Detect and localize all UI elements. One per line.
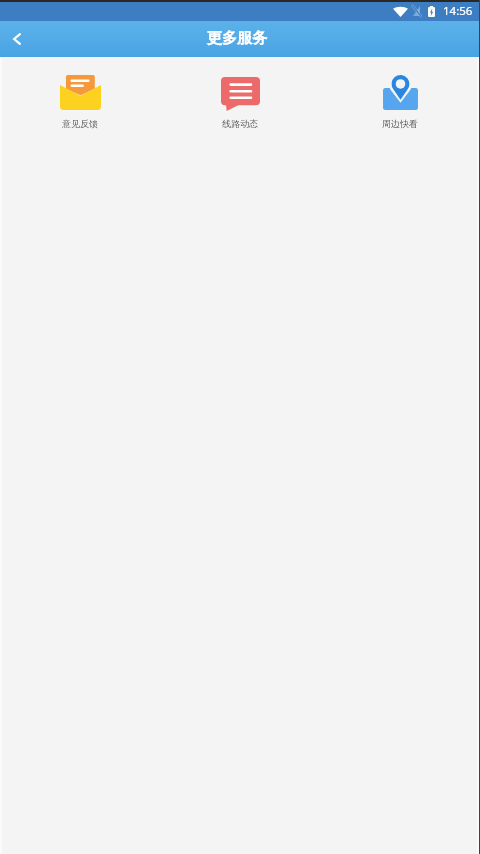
staticText: 14:56	[443, 3, 473, 19]
staticText: 意见反馈	[62, 118, 98, 129]
button[interactable]: 意见反馈	[0, 75, 160, 129]
button[interactable]: Back	[0, 21, 34, 57]
button[interactable]: 周边快看	[320, 75, 480, 129]
button[interactable]: 线路动态	[160, 75, 320, 129]
staticText: 更多服务	[207, 29, 267, 48]
staticText: 线路动态	[222, 118, 258, 129]
staticText: 周边快看	[382, 118, 418, 129]
